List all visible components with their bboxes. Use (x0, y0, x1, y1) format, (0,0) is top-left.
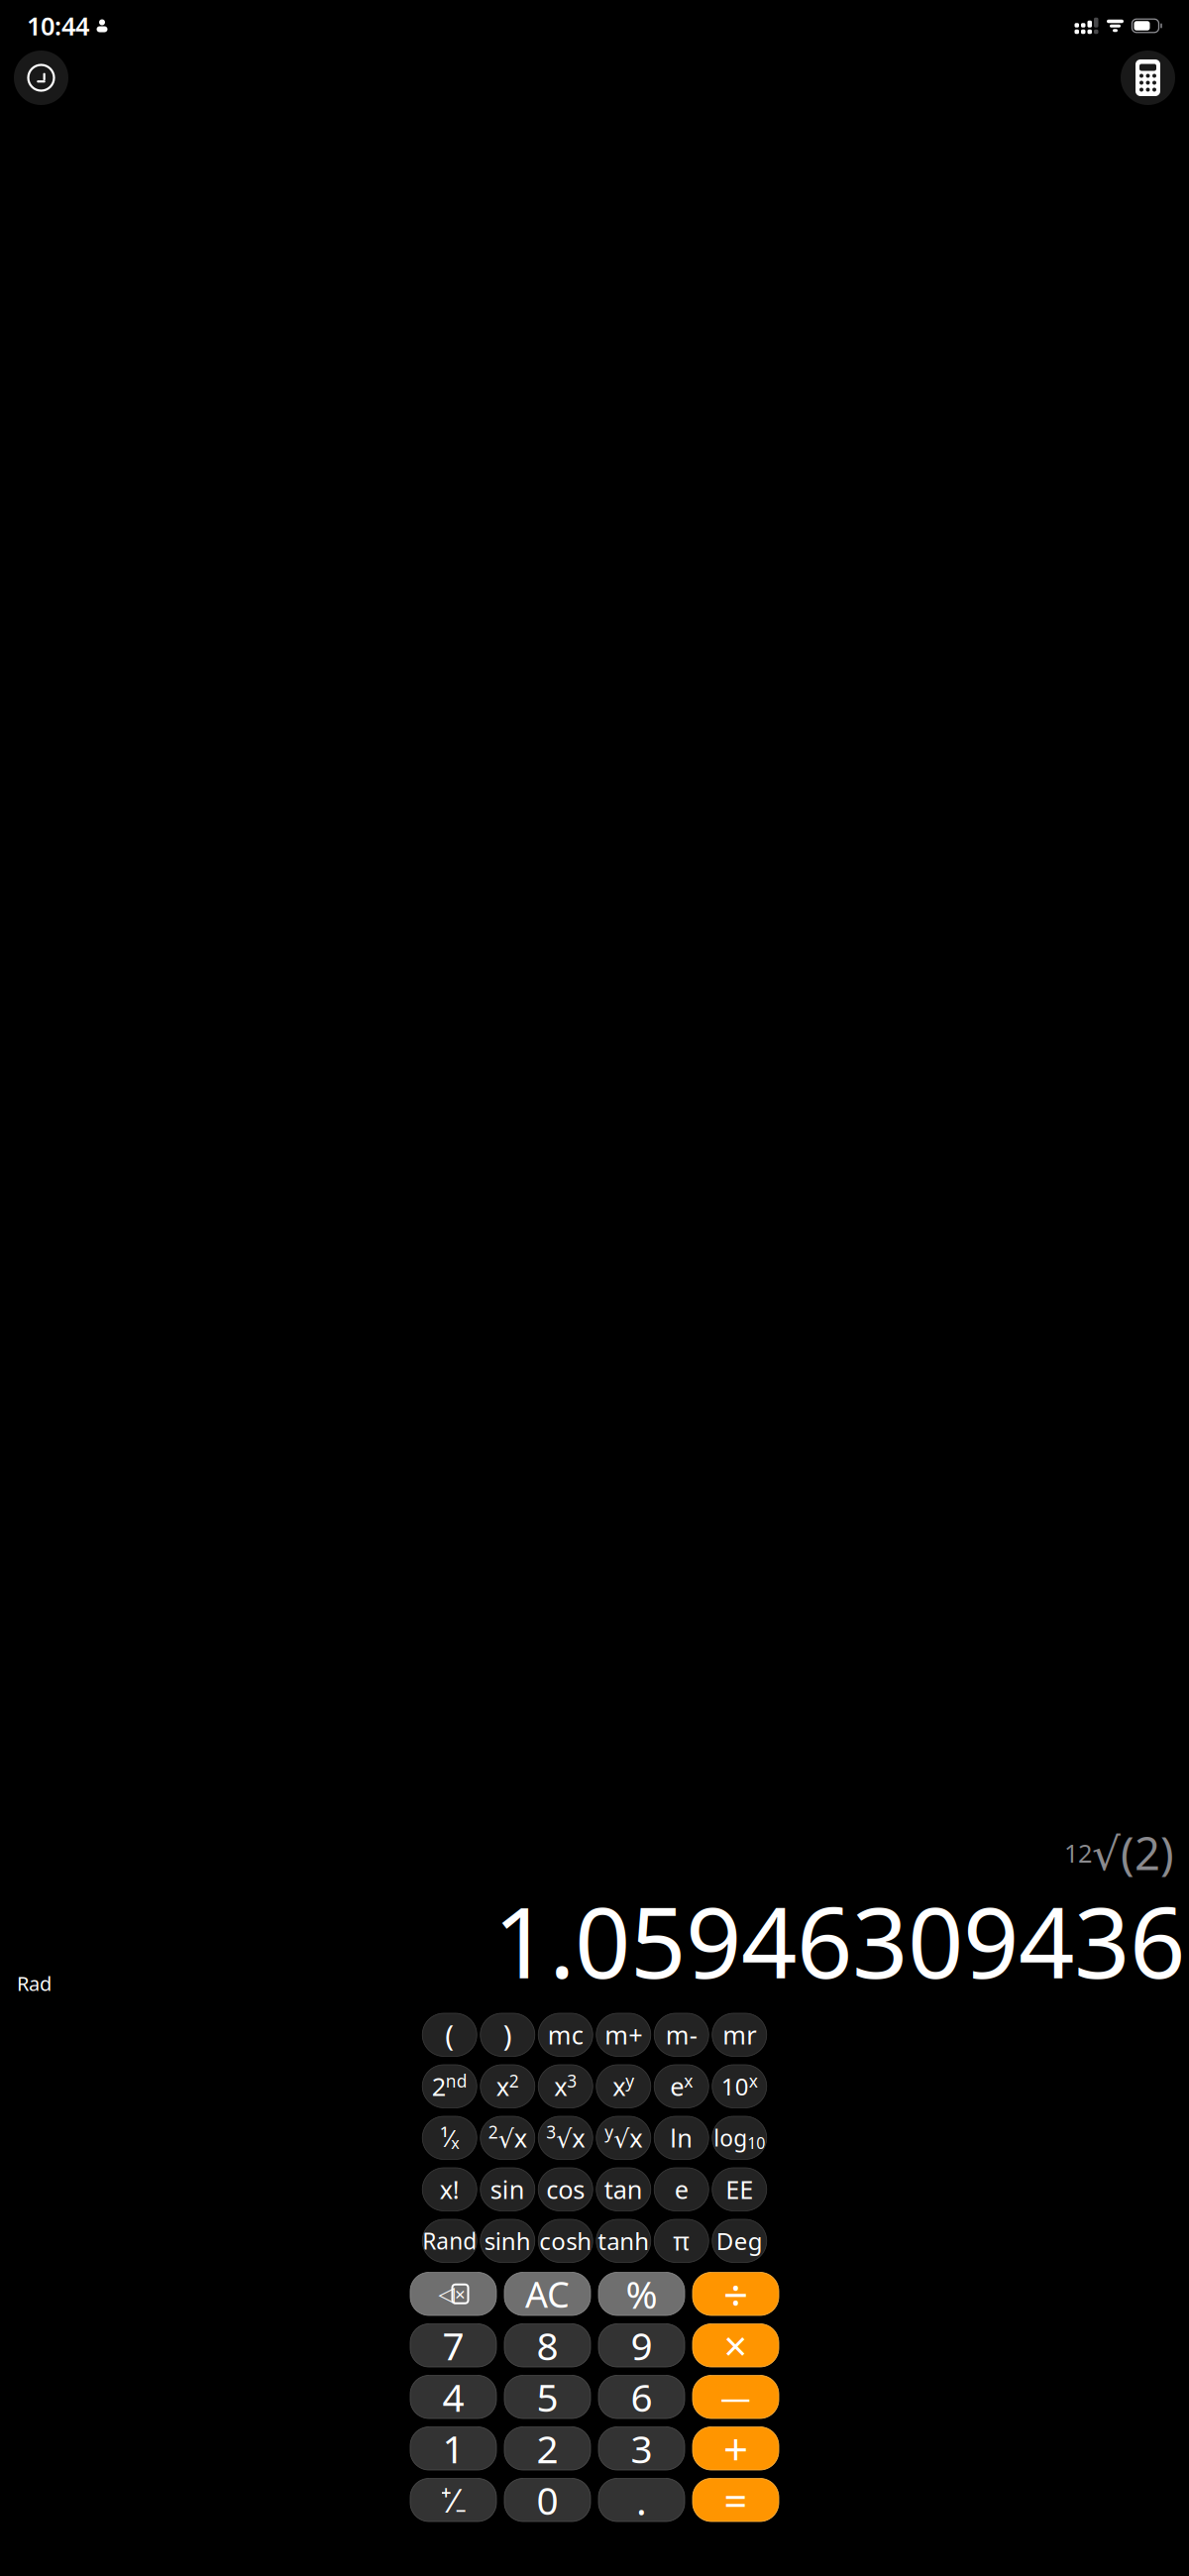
staticText: x (451, 2132, 459, 2153)
staticText: √x (556, 2121, 585, 2154)
staticText: 2 (509, 2069, 519, 2092)
staticText: 3 (631, 2423, 652, 2474)
button[interactable]: mr (712, 2013, 767, 2056)
staticText: Rand (422, 2226, 477, 2256)
staticText: 8 (537, 2320, 558, 2371)
button[interactable]: x (480, 2065, 535, 2108)
staticText: 9 (631, 2320, 652, 2371)
button[interactable]: e (654, 2065, 709, 2108)
staticText: tanh (598, 2225, 649, 2257)
staticText: e (675, 2173, 688, 2206)
staticText: 3 (567, 2069, 577, 2092)
staticText: x (749, 2069, 758, 2092)
staticText: m+ (605, 2018, 642, 2051)
staticText: 1.05946309436 (493, 1876, 1185, 2005)
staticText: Deg (716, 2225, 763, 2257)
button[interactable]: tan (596, 2168, 651, 2211)
staticText: x (613, 2070, 625, 2103)
staticText: 10 (721, 2071, 749, 2102)
button[interactable]: EE (712, 2168, 767, 2211)
button[interactable]: 1 (410, 2427, 496, 2470)
staticText: 2 (537, 2423, 558, 2474)
staticText: x! (440, 2173, 460, 2206)
button[interactable]: Delete (410, 2272, 496, 2315)
staticText: log (714, 2123, 747, 2153)
button[interactable]: × (693, 2324, 779, 2367)
button[interactable]: m+ (596, 2013, 651, 2056)
button[interactable]: ÷ (693, 2272, 779, 2315)
button[interactable]: — (693, 2375, 779, 2418)
button[interactable]: cosh (538, 2219, 593, 2262)
button[interactable]: 2 (422, 2065, 477, 2108)
staticText: mr (723, 2018, 756, 2051)
button[interactable]: + (693, 2427, 779, 2470)
button[interactable]: sin (480, 2168, 535, 2211)
staticText: 10 (747, 2132, 765, 2153)
button[interactable]: 10 (712, 2065, 767, 2108)
button[interactable]: 9 (598, 2324, 685, 2367)
staticText: ⁺⁄₋ (440, 2478, 466, 2522)
button[interactable]: mc (538, 2013, 593, 2056)
button[interactable]: ln (654, 2116, 709, 2159)
staticText: 12 (1064, 1836, 1092, 1870)
button[interactable]: Rand (422, 2219, 477, 2262)
button[interactable]: x! (422, 2168, 477, 2211)
button[interactable]: AC (504, 2272, 591, 2315)
button[interactable]: = (693, 2478, 779, 2522)
button[interactable]: Calculator (1121, 51, 1175, 105)
staticText: cos (546, 2173, 585, 2206)
button[interactable]: 3 (598, 2427, 685, 2470)
staticText: x (554, 2070, 567, 2103)
staticText: y (605, 2120, 614, 2143)
button[interactable]: m- (654, 2013, 709, 2056)
button[interactable]: 0 (504, 2478, 591, 2522)
staticText: cosh (539, 2225, 592, 2257)
staticText: 5 (537, 2372, 558, 2422)
staticText: ) (503, 2016, 512, 2054)
button[interactable]: e (654, 2168, 709, 2211)
staticText: EE (725, 2173, 753, 2206)
staticText: √x (614, 2121, 642, 2154)
button[interactable]: ⁺⁄₋ (410, 2478, 496, 2522)
button[interactable]: 3 (538, 2116, 593, 2159)
button[interactable]: 6 (598, 2375, 685, 2418)
button[interactable]: 5 (504, 2375, 591, 2418)
button[interactable]: π (654, 2219, 709, 2262)
button[interactable]: History (14, 51, 68, 105)
button[interactable]: ) (480, 2013, 535, 2056)
button[interactable]: log (712, 2116, 767, 2159)
staticText: × (455, 2282, 466, 2306)
button[interactable]: tanh (596, 2219, 651, 2262)
staticText: 0 (537, 2475, 558, 2525)
button[interactable]: ¹⁄ (422, 2116, 477, 2159)
button[interactable]: 7 (410, 2324, 496, 2367)
staticText: m- (666, 2018, 697, 2051)
button[interactable]: sinh (480, 2219, 535, 2262)
staticText: x (684, 2069, 693, 2092)
button[interactable]: y (596, 2116, 651, 2159)
staticText: ln (670, 2121, 693, 2154)
staticText: ¹⁄ (440, 2122, 451, 2154)
button[interactable]: x (538, 2065, 593, 2108)
button[interactable]: . (598, 2478, 685, 2522)
button[interactable]: 4 (410, 2375, 496, 2418)
button[interactable]: Deg (712, 2219, 767, 2262)
staticText: sinh (484, 2225, 531, 2257)
button[interactable]: x (596, 2065, 651, 2108)
staticText: π (673, 2224, 690, 2257)
button[interactable]: ( (422, 2013, 477, 2056)
staticText: % (626, 2268, 657, 2319)
staticText: 6 (631, 2372, 652, 2422)
staticText: y (625, 2069, 634, 2092)
staticText: 2 (432, 2070, 446, 2103)
staticText: x (496, 2070, 509, 2103)
button[interactable]: 2 (504, 2427, 591, 2470)
staticText: tan (604, 2173, 643, 2206)
button[interactable]: 8 (504, 2324, 591, 2367)
button[interactable]: % (598, 2272, 685, 2315)
staticText: + (723, 2419, 748, 2477)
staticText: 10:44 (27, 9, 89, 42)
button[interactable]: 2 (480, 2116, 535, 2159)
staticText: Rad (17, 1970, 52, 1996)
button[interactable]: cos (538, 2168, 593, 2211)
